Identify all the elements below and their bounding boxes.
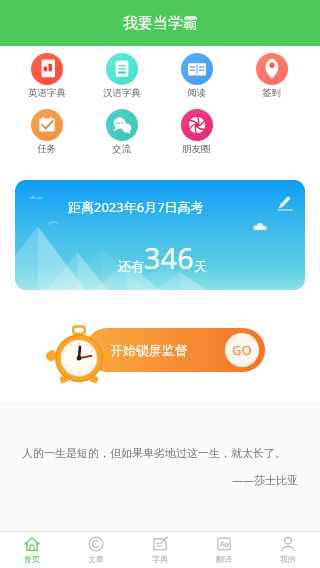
button[interactable]: 阅读 bbox=[159, 53, 234, 99]
staticText: 翻译 bbox=[216, 554, 232, 564]
button[interactable]: 交流 bbox=[84, 109, 159, 155]
button[interactable]: 英语字典 bbox=[9, 53, 84, 99]
button[interactable]: 任务 bbox=[9, 109, 84, 155]
button[interactable]: 汉语字典 bbox=[84, 53, 159, 99]
button[interactable]: 编辑目标 bbox=[275, 192, 295, 212]
staticText: 346 bbox=[144, 238, 194, 277]
button[interactable]: 距离2023年6月7日高考 bbox=[15, 180, 305, 290]
staticText: ——莎士比亚 bbox=[22, 472, 298, 487]
button[interactable]: 字典 bbox=[128, 532, 192, 568]
staticText: 字典 bbox=[152, 554, 168, 564]
staticText: 我要当学霸 bbox=[123, 14, 198, 33]
staticText: 签到 bbox=[262, 87, 281, 99]
staticText: 我的 bbox=[280, 554, 296, 564]
staticText: 朋友圈 bbox=[182, 143, 211, 155]
staticText: 距离2023年6月7日高考 bbox=[68, 198, 204, 216]
staticText: GO bbox=[232, 341, 252, 359]
staticText: 开始锁屏监督 bbox=[110, 342, 188, 358]
staticText: 英语字典 bbox=[28, 87, 66, 99]
button[interactable]: 开始锁屏监督 bbox=[85, 328, 265, 372]
staticText: 汉语字典 bbox=[103, 87, 141, 99]
button[interactable]: 我的 bbox=[256, 532, 320, 568]
staticText: 文章 bbox=[88, 554, 104, 564]
staticText: 人的一生是短的，但如果卑劣地过这一生，就太长了。 bbox=[22, 446, 286, 460]
staticText: 还有 bbox=[118, 258, 144, 274]
staticText: 交流 bbox=[112, 143, 131, 155]
button[interactable]: 文章 bbox=[64, 532, 128, 568]
button[interactable]: 首页 bbox=[0, 532, 64, 568]
other: 闹钟 bbox=[51, 326, 107, 374]
staticText: 阅读 bbox=[187, 87, 206, 99]
staticText: 首页 bbox=[24, 554, 40, 564]
button[interactable]: 签到 bbox=[234, 53, 309, 99]
button[interactable]: 朋友圈 bbox=[159, 109, 234, 155]
staticText: 任务 bbox=[37, 143, 56, 155]
button[interactable]: 翻译 bbox=[192, 532, 256, 568]
staticText: 天 bbox=[194, 258, 207, 274]
